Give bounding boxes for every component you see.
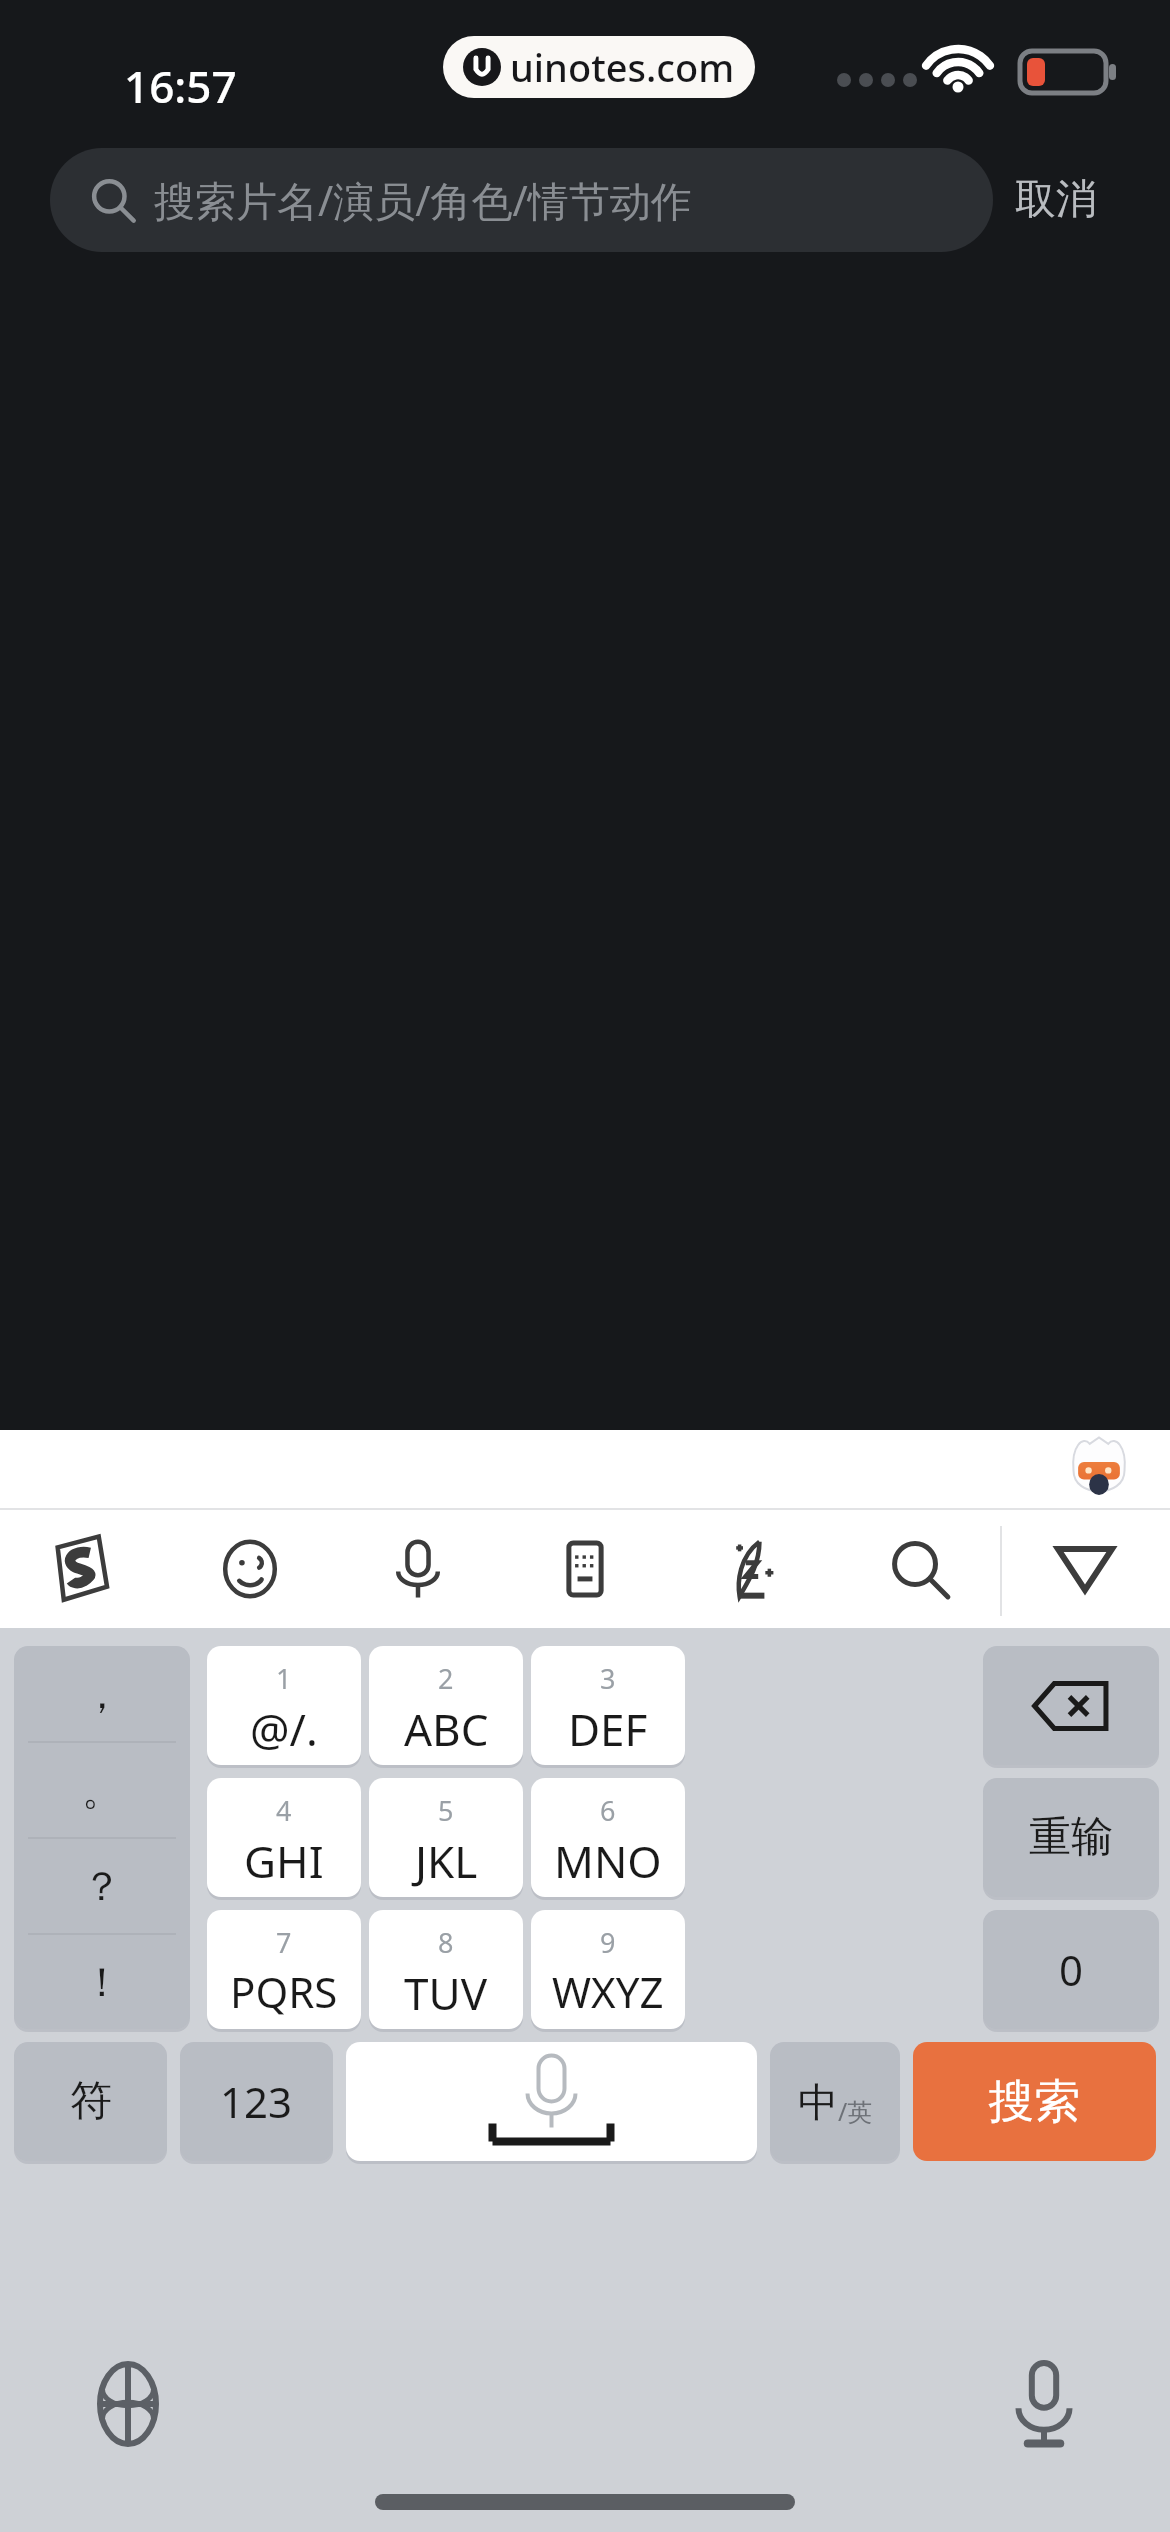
button[interactable]: Voice input — [360, 1510, 476, 1628]
button[interactable]: ， — [14, 1646, 190, 1741]
staticText: GHI — [244, 1831, 324, 1891]
staticText: JKL — [415, 1831, 478, 1891]
button[interactable]: ？ — [14, 1839, 190, 1933]
button[interactable]: Search — [862, 1510, 978, 1628]
button[interactable]: 2 — [369, 1646, 523, 1765]
button[interactable]: 取消 — [1015, 148, 1097, 252]
button[interactable]: 4 — [207, 1778, 361, 1897]
button[interactable]: 符 — [14, 2042, 167, 2161]
button[interactable]: ！ — [14, 1935, 190, 2029]
button[interactable]: 7 — [207, 1910, 361, 2029]
staticText: 16:57 — [124, 56, 237, 116]
staticText: ！ — [82, 1957, 122, 2007]
button[interactable]: Emoji — [192, 1510, 308, 1628]
button[interactable]: 123 — [180, 2042, 333, 2161]
staticText: ABC — [404, 1699, 489, 1759]
staticText: 4 — [276, 1792, 292, 1829]
button[interactable]: Keyboard layout — [527, 1510, 643, 1628]
button[interactable]: Change language — [84, 2360, 172, 2448]
button[interactable]: 6 — [531, 1778, 685, 1897]
button[interactable]: 9 — [531, 1910, 685, 2029]
staticText: 0 — [1059, 1941, 1084, 1998]
staticText: 。 — [82, 1765, 122, 1815]
staticText: WXYZ — [552, 1963, 664, 2020]
staticText: 9 — [600, 1924, 616, 1961]
staticText: 8 — [438, 1924, 454, 1961]
button[interactable]: 5 — [369, 1778, 523, 1897]
staticText: DEF — [568, 1699, 648, 1759]
staticText: 搜索 — [913, 2073, 1156, 2131]
staticText: 7 — [276, 1924, 292, 1961]
button[interactable]: Space — [346, 2042, 757, 2161]
staticText: 6 — [600, 1792, 616, 1829]
staticText: ， — [82, 1669, 122, 1719]
button[interactable]: Hide keyboard — [1027, 1510, 1143, 1628]
staticText: uinotes.com — [510, 41, 735, 93]
button[interactable]: 1 — [207, 1646, 361, 1765]
staticText: 符 — [70, 2075, 112, 2128]
staticText: 5 — [438, 1792, 454, 1829]
button[interactable]: Backspace — [983, 1646, 1159, 1765]
staticText: 中 — [798, 2077, 838, 2127]
button[interactable]: 搜索 — [913, 2042, 1156, 2161]
staticText: 3 — [600, 1660, 616, 1697]
staticText: @/. — [250, 1699, 318, 1759]
button[interactable]: Handwriting — [694, 1510, 810, 1628]
button[interactable]: 中 — [770, 2042, 900, 2161]
button[interactable]: 8 — [369, 1910, 523, 2029]
staticText: 取消 — [1015, 174, 1097, 226]
staticText: TUV — [404, 1963, 488, 2023]
staticText: 123 — [220, 2073, 293, 2130]
staticText: 搜索片名/演员/角色/情节动作 — [154, 172, 692, 228]
button[interactable]: Voice input — [1000, 2360, 1088, 2448]
button[interactable]: 。 — [14, 1743, 190, 1837]
button[interactable]: 搜索片名/演员/角色/情节动作 — [50, 148, 993, 252]
button[interactable]: 重输 — [983, 1778, 1159, 1897]
staticText: ？ — [82, 1861, 122, 1911]
staticText: 重输 — [1029, 1811, 1113, 1864]
staticText: PQRS — [230, 1963, 338, 2020]
other: Sogou mascot — [1070, 1434, 1128, 1504]
staticText: MNO — [554, 1831, 662, 1891]
button[interactable]: Sogou — [24, 1510, 140, 1628]
staticText: /英 — [838, 2094, 873, 2128]
button[interactable]: 0 — [983, 1910, 1159, 2029]
button[interactable]: 3 — [531, 1646, 685, 1765]
staticText: 1 — [276, 1660, 292, 1697]
staticText: 2 — [438, 1660, 454, 1697]
